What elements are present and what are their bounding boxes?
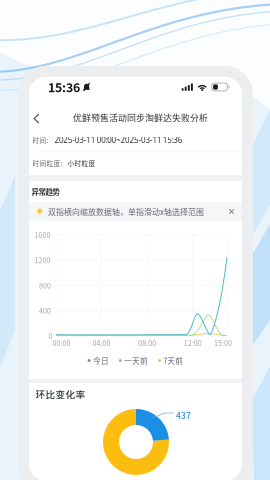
staticText: 双指横向缩放数据轴，单指滑动x轴选择范围 [48, 206, 204, 217]
staticText: 今日 [93, 355, 109, 366]
staticText: 00:00 [52, 338, 70, 348]
staticText: 0 [48, 331, 52, 341]
staticText: 400 [39, 306, 51, 316]
staticText: 时间粒度: [32, 158, 62, 168]
staticText: 1200 [34, 255, 50, 265]
staticText: 15:00 [214, 338, 232, 348]
staticText: 12:00 [184, 338, 202, 348]
staticText: 优鲜预售活动同步淘鲜达失败分析 [73, 111, 208, 124]
button[interactable]: Back [28, 108, 44, 128]
staticText: 小时粒度 [67, 158, 95, 168]
staticText: 2025-03-11 00:00~2025-03-11 15:36 [54, 135, 183, 145]
staticText: 环比变化率 [35, 387, 85, 401]
staticText: 7天前 [163, 355, 183, 366]
staticText: 异常趋势 [31, 186, 59, 197]
staticText: 15:36 [48, 78, 80, 96]
staticText: 437 [176, 409, 191, 421]
staticText: 04:00 [93, 338, 111, 348]
staticText: 08:00 [138, 338, 156, 348]
staticText: 1600 [34, 230, 50, 240]
staticText: 时间: [32, 135, 48, 145]
staticText: 800 [39, 280, 51, 291]
button[interactable]: Close tip [226, 206, 237, 217]
staticText: 一天前 [124, 355, 148, 366]
